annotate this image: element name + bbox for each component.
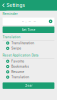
staticText: Translation [3,35,21,39]
button[interactable]: Transliteration [0,40,57,46]
staticText: -- : -- -- [21,19,35,23]
button[interactable]: Swipe [0,46,57,51]
staticText: Reminder [3,12,18,16]
staticText: Set Time [21,28,35,32]
staticText: Settings [6,3,24,8]
button[interactable]: Favorite [0,59,57,64]
button[interactable]: Bookmarks [0,64,57,69]
button[interactable]: Clear [0,82,57,89]
button[interactable]: Set Time [0,26,57,33]
button[interactable]: Pick time [48,19,53,24]
button[interactable]: Back [0,0,6,11]
staticText: Reset Application Data [3,53,39,57]
staticText: Bookmarks [11,65,29,68]
staticText: Clear [24,84,32,88]
staticText: Resume [11,70,24,74]
staticText: Transliteration [11,41,34,45]
staticText: Translation [11,75,29,79]
staticText: Favorite [11,59,24,63]
button[interactable]: Resume [0,69,57,74]
staticText: Swipe [11,46,21,50]
button[interactable]: Translation [0,74,57,80]
